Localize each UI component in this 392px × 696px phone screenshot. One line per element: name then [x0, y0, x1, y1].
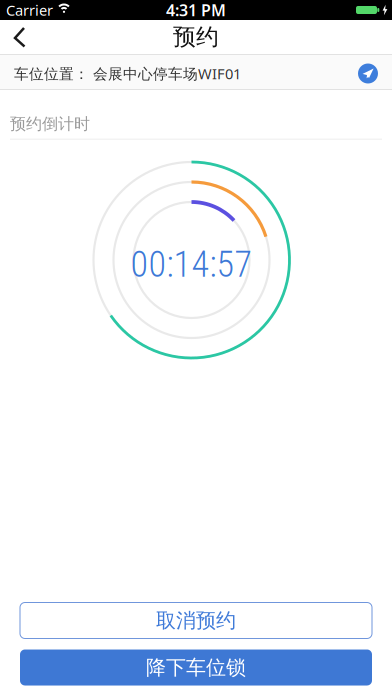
staticText: 车位位置： 会展中心停车场WIF01	[14, 64, 241, 83]
staticText: 4:31 PM	[166, 0, 226, 21]
staticText: 取消预约	[156, 608, 236, 633]
staticText: 降下车位锁	[146, 655, 246, 680]
button[interactable]: 取消预约	[20, 602, 372, 638]
button[interactable]: Send	[358, 63, 378, 83]
button[interactable]: 降下车位锁	[20, 649, 372, 685]
button[interactable]: Back	[6, 22, 36, 52]
staticText: Carrier	[6, 0, 53, 20]
staticText: 预约	[173, 23, 219, 51]
staticText: 00:14:57	[130, 243, 252, 286]
staticText: 预约倒计时	[10, 114, 90, 134]
